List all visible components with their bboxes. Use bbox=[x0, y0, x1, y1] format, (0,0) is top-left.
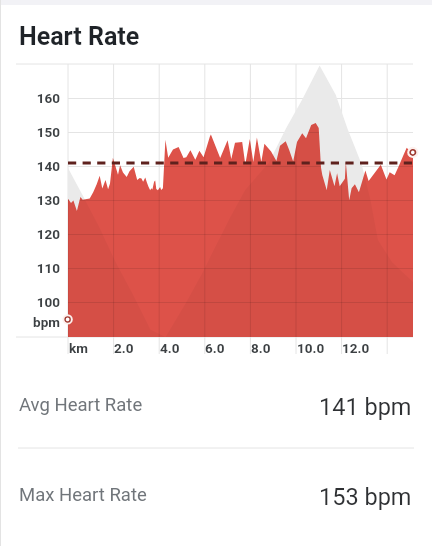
staticText: 140 bbox=[0, 158, 60, 174]
staticText: 6.0 bbox=[205, 340, 225, 356]
staticText: 150 bbox=[0, 124, 60, 140]
staticText: Max Heart Rate bbox=[19, 484, 147, 506]
staticText: 4.0 bbox=[160, 340, 180, 356]
button[interactable]: Max Heart Rate bbox=[0, 471, 432, 519]
staticText: 2.0 bbox=[114, 340, 134, 356]
staticText: km bbox=[69, 340, 88, 356]
staticText: 10.0 bbox=[297, 340, 325, 356]
staticText: Heart Rate bbox=[19, 22, 140, 51]
staticText: 153 bpm bbox=[319, 483, 412, 511]
staticText: 110 bbox=[0, 260, 60, 276]
staticText: 100 bbox=[0, 294, 60, 310]
staticText: 120 bbox=[0, 226, 60, 242]
staticText: 130 bbox=[0, 192, 60, 208]
staticText: 141 bpm bbox=[319, 393, 412, 421]
staticText: 12.0 bbox=[342, 340, 370, 356]
button[interactable]: Avg Heart Rate bbox=[0, 381, 432, 429]
staticText: 160 bbox=[0, 90, 60, 106]
staticText: Avg Heart Rate bbox=[19, 394, 143, 416]
staticText: bpm bbox=[0, 314, 60, 330]
staticText: 8.0 bbox=[251, 340, 271, 356]
